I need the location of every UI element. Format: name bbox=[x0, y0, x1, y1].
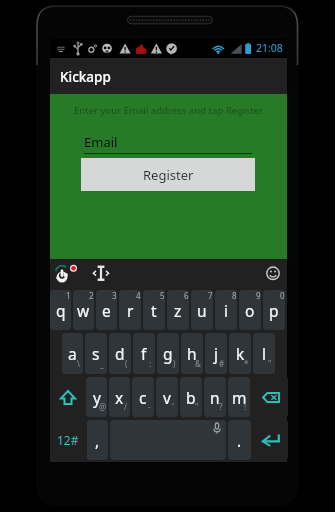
staticText: p bbox=[269, 300, 279, 321]
staticText: e bbox=[102, 300, 111, 321]
staticText: w bbox=[77, 300, 90, 321]
staticText: j bbox=[214, 343, 218, 364]
staticText: / bbox=[124, 401, 127, 412]
button[interactable]: h bbox=[181, 333, 203, 374]
button[interactable]: Enter bbox=[254, 420, 288, 460]
button[interactable]: c bbox=[132, 377, 154, 417]
staticText: 2 bbox=[89, 290, 94, 301]
staticText: t bbox=[151, 300, 157, 321]
staticText: 4 bbox=[136, 290, 141, 301]
staticText: 9 bbox=[256, 290, 261, 301]
staticText: x bbox=[115, 387, 124, 408]
staticText: f bbox=[141, 343, 147, 364]
button[interactable]: n bbox=[204, 377, 226, 417]
button[interactable]: a bbox=[62, 333, 83, 374]
staticText: q bbox=[56, 300, 66, 321]
button[interactable]: Register bbox=[81, 158, 255, 191]
button[interactable]: b bbox=[180, 377, 202, 417]
staticText: Register bbox=[143, 166, 194, 184]
staticText: & bbox=[195, 358, 201, 369]
staticText: # bbox=[219, 358, 225, 369]
staticText: " bbox=[195, 401, 199, 412]
button[interactable]: x bbox=[109, 377, 130, 417]
button[interactable]: u bbox=[191, 290, 213, 330]
button[interactable]: j bbox=[205, 333, 227, 374]
button[interactable]: y bbox=[86, 377, 107, 417]
button[interactable]: f bbox=[133, 333, 155, 374]
staticText: Enter your Email address and tap Registe… bbox=[50, 104, 287, 117]
staticText: k bbox=[236, 343, 245, 364]
button[interactable]: v bbox=[156, 377, 178, 417]
staticText: 7 bbox=[208, 290, 213, 301]
staticText: 5 bbox=[160, 290, 165, 301]
button[interactable]: Symbols bbox=[50, 420, 86, 460]
staticText: 8 bbox=[232, 290, 237, 301]
staticText: o bbox=[245, 300, 255, 321]
staticText: c bbox=[139, 387, 147, 408]
staticText: _ bbox=[100, 358, 104, 369]
staticText: . bbox=[237, 430, 242, 451]
button[interactable]: p bbox=[263, 290, 285, 330]
staticText: l bbox=[262, 343, 266, 364]
staticText: " bbox=[268, 358, 272, 369]
button[interactable]: q bbox=[50, 290, 71, 330]
staticText: d bbox=[115, 343, 125, 364]
staticText: : bbox=[149, 358, 152, 369]
staticText: g bbox=[163, 343, 173, 364]
staticText: 12# bbox=[57, 432, 79, 448]
staticText: ? bbox=[219, 401, 223, 412]
staticText: m bbox=[232, 387, 247, 408]
staticText: @ bbox=[99, 401, 107, 412]
button[interactable] bbox=[110, 420, 226, 460]
staticText: * bbox=[244, 358, 249, 369]
button[interactable]: Shift bbox=[50, 377, 85, 417]
staticText: 1 bbox=[66, 290, 71, 301]
staticText: 6 bbox=[184, 290, 189, 301]
button[interactable]: Backspace bbox=[254, 377, 288, 417]
button[interactable]: . bbox=[228, 420, 251, 460]
button[interactable]: e bbox=[96, 290, 117, 330]
staticText: a bbox=[68, 343, 77, 364]
staticText: 21:08 bbox=[256, 41, 283, 55]
button[interactable]: t bbox=[143, 290, 165, 330]
staticText: , bbox=[95, 430, 100, 451]
staticText: h bbox=[187, 343, 197, 364]
staticText: 0 bbox=[280, 290, 285, 301]
button[interactable]: r bbox=[119, 290, 141, 330]
button[interactable]: g bbox=[157, 333, 179, 374]
button[interactable]: l bbox=[253, 333, 275, 374]
staticText: i bbox=[224, 300, 228, 321]
staticText: Email bbox=[84, 133, 118, 151]
staticText: n bbox=[210, 387, 220, 408]
button[interactable]: k bbox=[229, 333, 251, 374]
staticText: b bbox=[186, 387, 196, 408]
button[interactable]: d bbox=[109, 333, 131, 374]
button[interactable]: i bbox=[215, 290, 237, 330]
staticText: v bbox=[163, 387, 171, 408]
staticText: ) bbox=[173, 358, 176, 369]
staticText: s bbox=[92, 343, 100, 364]
button[interactable]: s bbox=[85, 333, 107, 374]
button[interactable]: m bbox=[228, 377, 250, 417]
button[interactable]: , bbox=[87, 420, 108, 460]
button[interactable]: w bbox=[73, 290, 94, 330]
staticText: 3 bbox=[112, 290, 117, 301]
staticText: z bbox=[174, 300, 182, 321]
staticText: - bbox=[148, 401, 151, 412]
staticText: r bbox=[127, 300, 134, 321]
button[interactable]: o bbox=[239, 290, 261, 330]
staticText: Kickapp bbox=[60, 68, 111, 86]
staticText: y bbox=[93, 387, 101, 408]
staticText: ! bbox=[244, 401, 247, 412]
button[interactable]: z bbox=[167, 290, 189, 330]
staticText: \ bbox=[77, 358, 80, 369]
staticText: ' bbox=[172, 401, 174, 412]
staticText: ( bbox=[125, 358, 128, 369]
staticText: u bbox=[197, 300, 207, 321]
